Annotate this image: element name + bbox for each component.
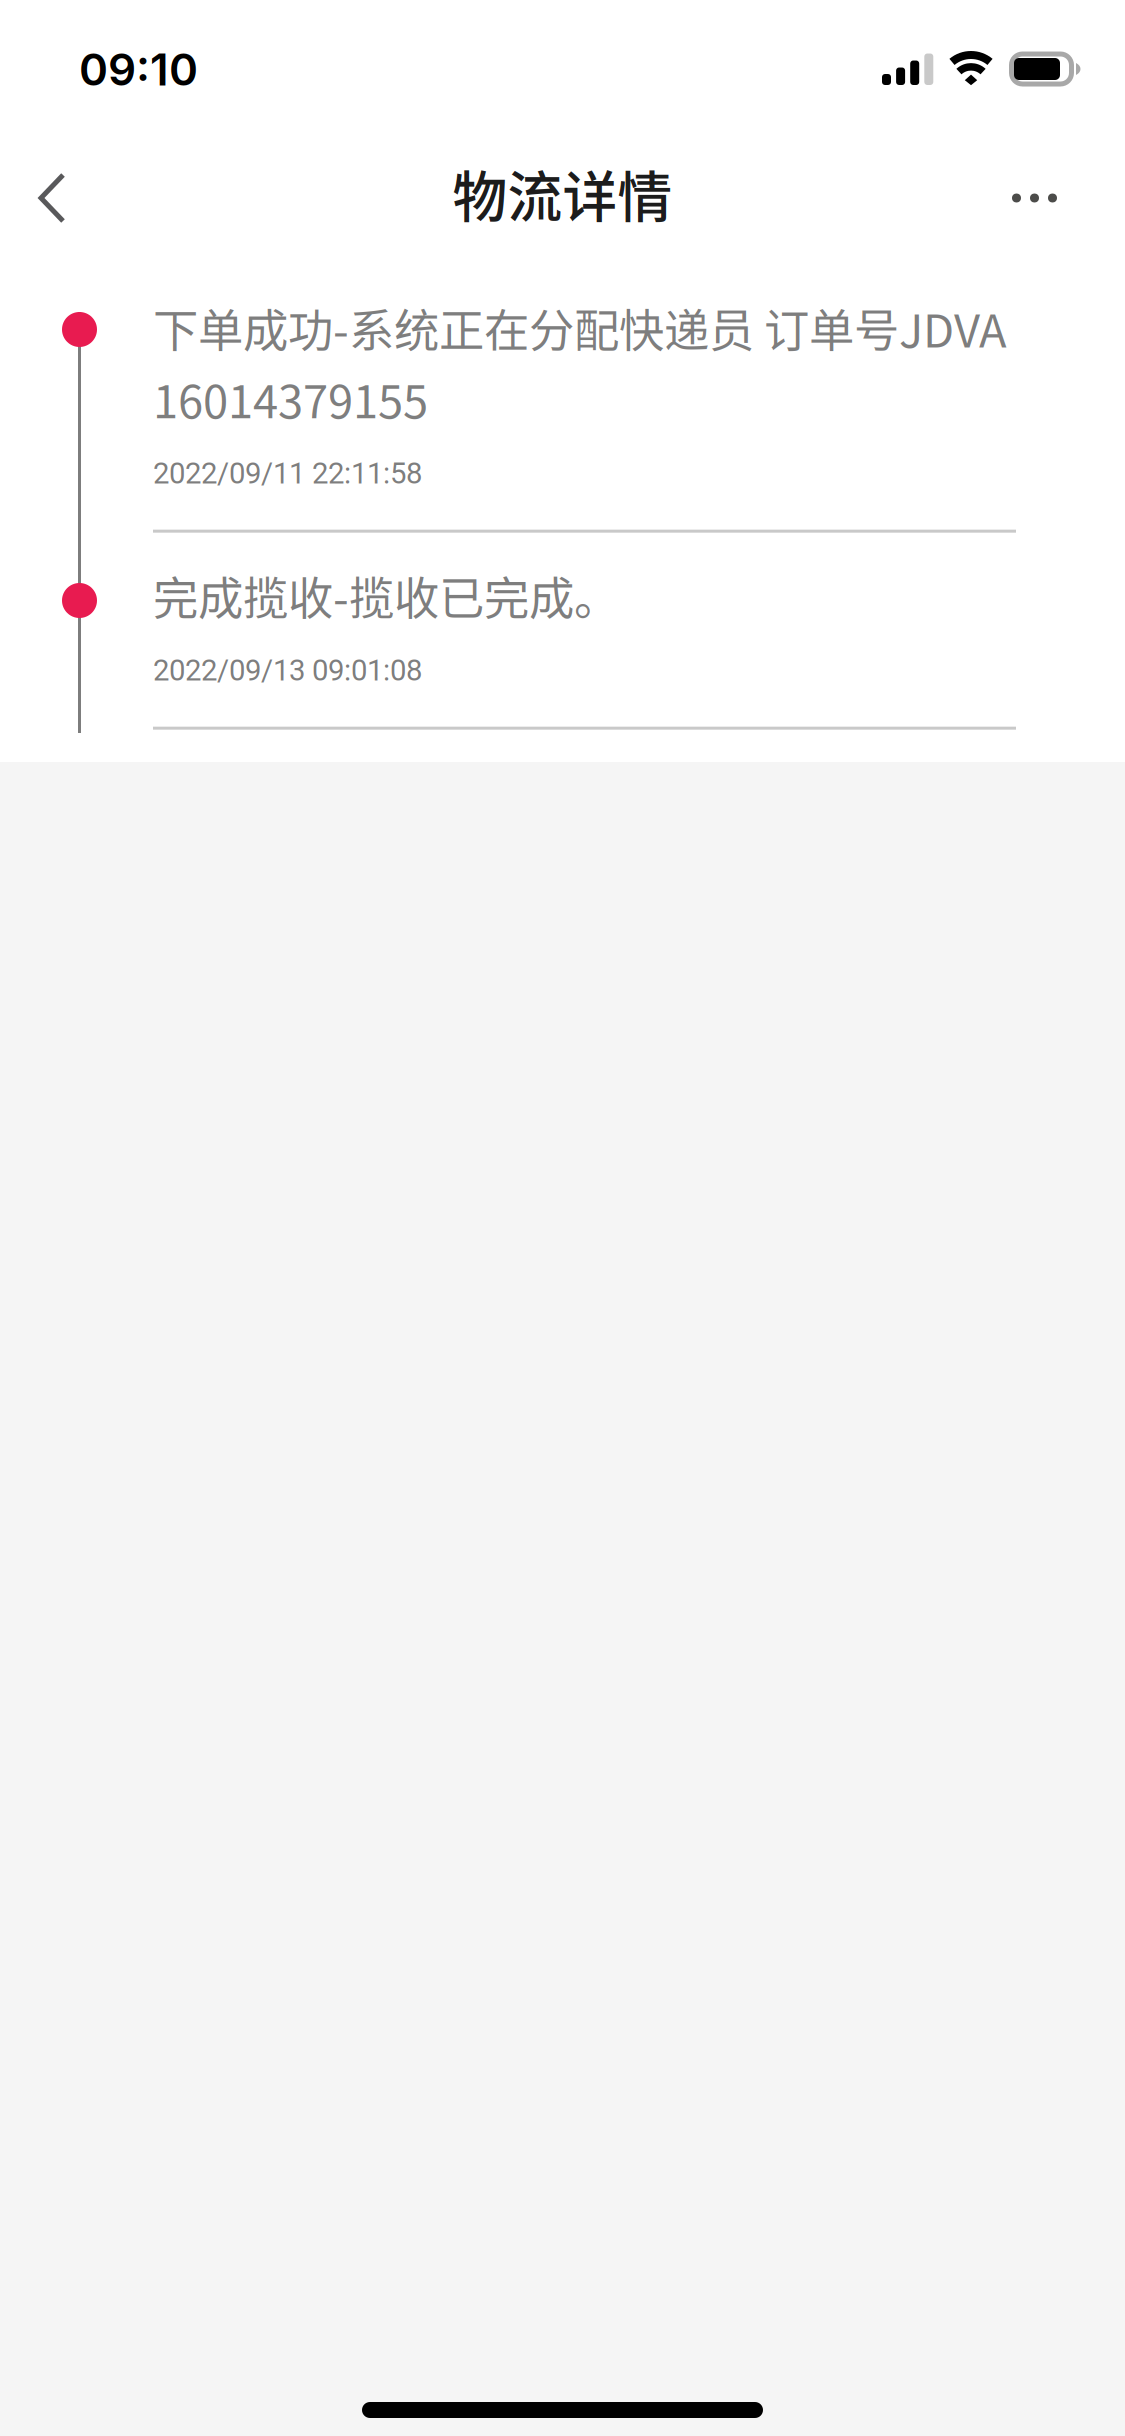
staticText: 下单成功-系统正在分配快递员 订单号JDVA 16014379155 (153, 295, 1007, 431)
staticText: 09:10 (79, 43, 198, 96)
staticText: 物流详情 (452, 153, 672, 233)
staticText: 2022/09/11 22:11:58 (153, 456, 422, 491)
staticText: 2022/09/13 09:01:08 (153, 653, 422, 688)
button[interactable]: 下单成功-系统正在分配快递员 订单号JDVA 16014379155 (153, 295, 1016, 533)
button[interactable]: 更多 (976, 101, 1093, 295)
button[interactable]: 完成揽收-揽收已完成。 (153, 533, 1016, 730)
button[interactable]: 返回 (0, 101, 104, 295)
staticText: 完成揽收-揽收已完成。 (153, 563, 619, 628)
